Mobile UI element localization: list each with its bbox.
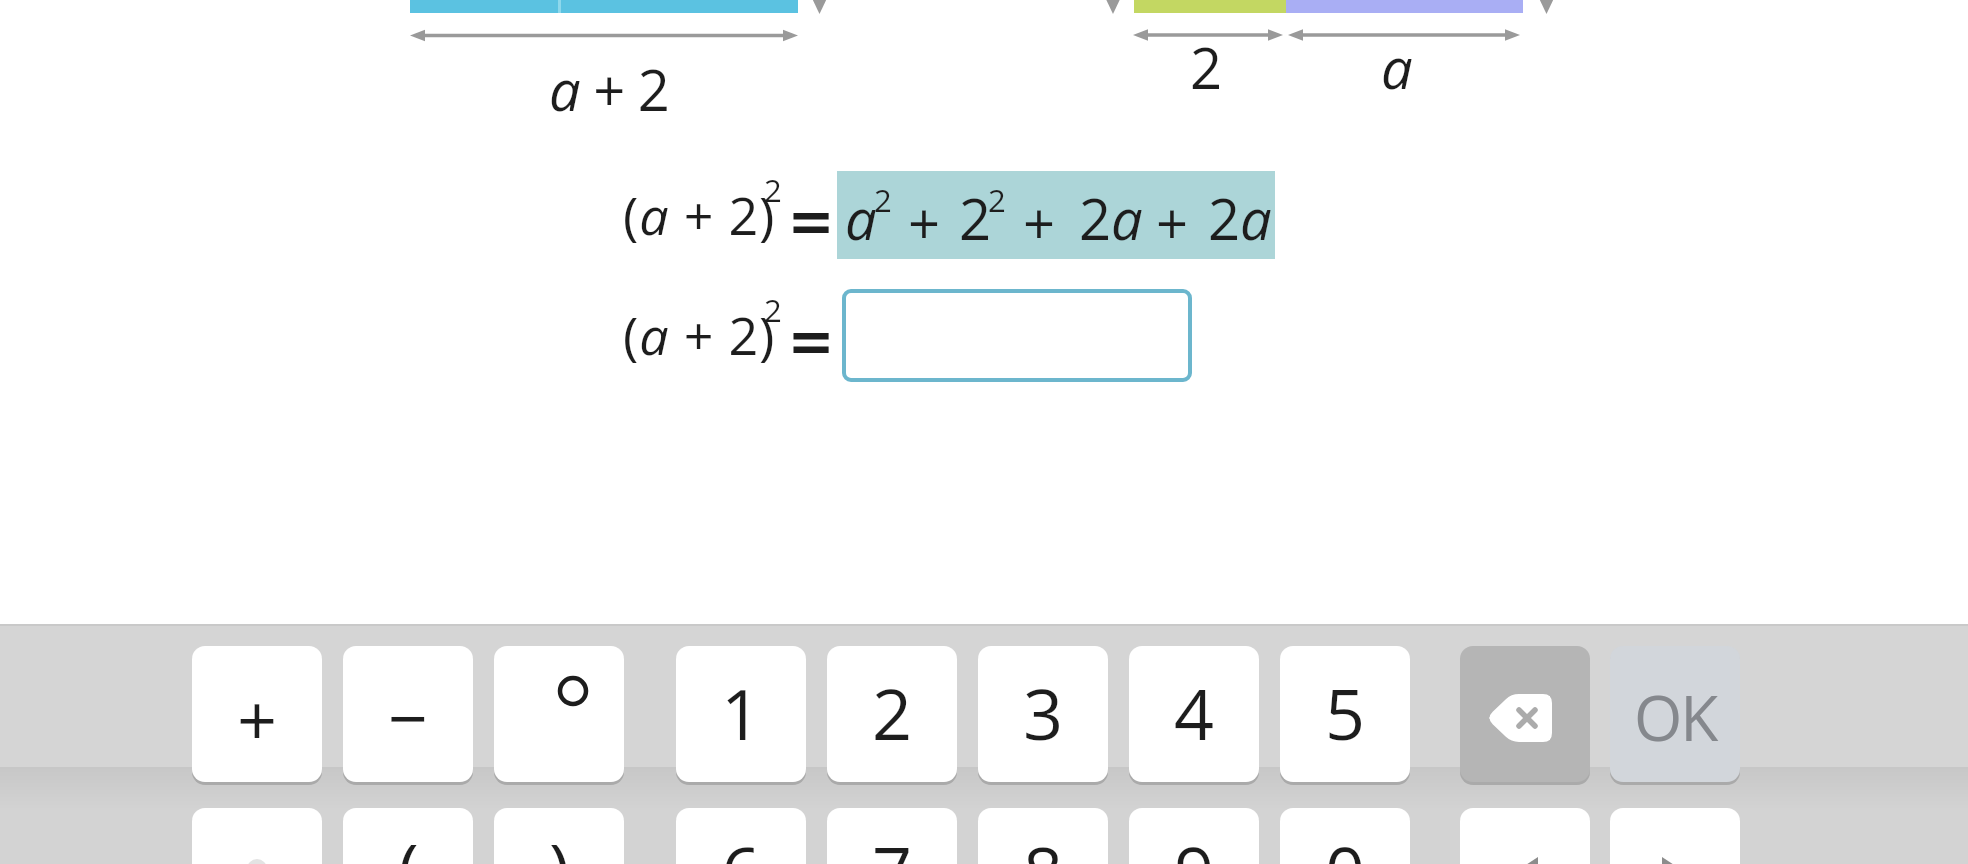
staticText: − [388, 669, 429, 764]
button[interactable]: 6 [676, 808, 806, 864]
staticText: 0 [1325, 823, 1366, 864]
staticText: a [845, 180, 877, 256]
staticText: 3 [1023, 665, 1064, 760]
button[interactable]: + [192, 646, 322, 782]
staticText: 9 [1174, 823, 1215, 864]
button[interactable]: − [343, 646, 473, 782]
staticText: ) [549, 820, 570, 864]
staticText: (a + 2) [623, 299, 776, 370]
staticText: 2 [988, 179, 1006, 221]
button[interactable]: 5 [1280, 646, 1410, 782]
button[interactable]: 1 [676, 646, 806, 782]
staticText: (a + 2) [623, 179, 776, 250]
button[interactable] [842, 289, 1192, 382]
button[interactable] [494, 646, 624, 782]
button[interactable]: 2 [827, 646, 957, 782]
button[interactable]: ) [494, 808, 624, 864]
button[interactable] [1460, 808, 1590, 864]
button[interactable] [1460, 646, 1590, 782]
staticText: 2a [1208, 180, 1272, 256]
staticText: 7 [872, 823, 913, 864]
staticText: + [908, 184, 941, 260]
button[interactable]: 9 [1129, 808, 1259, 864]
staticText: + [237, 671, 278, 766]
staticText: OK [1634, 675, 1717, 759]
button[interactable]: 0 [1280, 808, 1410, 864]
button[interactable]: OK [1610, 646, 1740, 782]
button[interactable]: 8 [978, 808, 1108, 864]
staticText: 5 [1325, 665, 1366, 760]
staticText: 2 [959, 180, 992, 256]
staticText: 2 [874, 179, 892, 221]
staticText: 8 [1023, 823, 1064, 864]
staticText: 2 [1190, 29, 1223, 105]
button[interactable]: 7 [827, 808, 957, 864]
staticText: 6 [721, 823, 762, 864]
staticText: 4 [1174, 665, 1215, 760]
staticText: 2 [764, 169, 782, 211]
staticText: a [1381, 29, 1413, 105]
button[interactable] [192, 808, 322, 864]
staticText: 2a [1079, 180, 1143, 256]
staticText: a + 2 [549, 51, 669, 127]
staticText: 2 [764, 289, 782, 331]
staticText: + [1156, 184, 1189, 260]
staticText: + [1023, 184, 1056, 260]
button[interactable]: 4 [1129, 646, 1259, 782]
button[interactable]: ( [343, 808, 473, 864]
staticText: 1 [721, 665, 762, 760]
staticText: 2 [872, 665, 913, 760]
button[interactable] [1610, 808, 1740, 864]
button[interactable]: 3 [978, 646, 1108, 782]
staticText: ( [398, 820, 419, 864]
